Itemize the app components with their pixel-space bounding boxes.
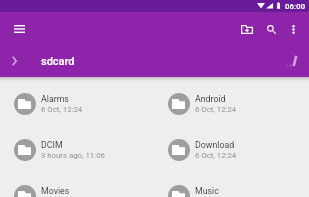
button[interactable]: Root	[0, 45, 28, 77]
button[interactable]: sdcard	[28, 45, 81, 77]
button[interactable]: Download	[154, 127, 309, 173]
button[interactable]: Movies	[0, 173, 154, 197]
staticText: DCIM	[41, 140, 63, 150]
button[interactable]: DCIM	[0, 127, 154, 173]
button[interactable]: Music	[154, 173, 309, 197]
staticText: 6 Oct, 12:24	[195, 105, 237, 114]
staticText: 06:00	[285, 2, 306, 11]
staticText: Movies	[41, 186, 70, 196]
staticText: 3 hours ago, 11:06	[41, 151, 105, 160]
button[interactable]: Android	[154, 81, 309, 127]
button[interactable]: More options	[283, 17, 307, 41]
staticText: Download	[195, 140, 235, 150]
staticText: 6 Oct, 12:24	[41, 105, 83, 114]
staticText: Music	[195, 186, 219, 196]
button[interactable]: Alarms	[0, 81, 154, 127]
button[interactable]: Edit path	[282, 52, 300, 70]
button[interactable]: Search	[259, 17, 283, 41]
staticText: Android	[195, 94, 226, 104]
button[interactable]: Create new folder	[235, 17, 259, 41]
button[interactable]: Navigation menu	[6, 16, 32, 42]
staticText: 6 Oct, 12:24	[195, 151, 237, 160]
staticText: Alarms	[41, 94, 69, 104]
staticText: sdcard	[41, 55, 75, 68]
